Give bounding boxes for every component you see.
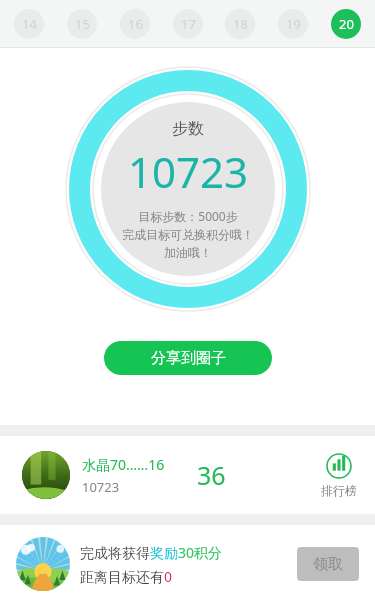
- staticText: 10723: [82, 478, 120, 496]
- button[interactable]: 15: [67, 9, 97, 39]
- button[interactable]: 20: [331, 9, 361, 39]
- staticText: 14: [22, 15, 37, 33]
- staticText: 完成目标可兑换积分哦！: [122, 227, 254, 242]
- staticText: 17: [181, 15, 196, 33]
- button[interactable]: 水晶70……16: [0, 436, 375, 514]
- staticText: 完成将获得奖励30积分: [80, 543, 223, 562]
- staticText: 加油哦！: [164, 245, 212, 260]
- staticText: 分享到圈子: [151, 349, 226, 368]
- staticText: 领取: [313, 555, 343, 574]
- staticText: 水晶70……16: [82, 455, 165, 474]
- staticText: 20: [339, 15, 354, 33]
- staticText: 36: [197, 458, 226, 492]
- staticText: 排行榜: [321, 483, 357, 498]
- button[interactable]: 14: [14, 9, 44, 39]
- staticText: 16: [128, 15, 143, 33]
- button[interactable]: 16: [120, 9, 150, 39]
- button[interactable]: 19: [278, 9, 308, 39]
- staticText: 15: [75, 15, 90, 33]
- button[interactable]: 18: [225, 9, 255, 39]
- staticText: 目标步数：5000步: [138, 208, 238, 224]
- button[interactable]: 17: [173, 9, 203, 39]
- staticText: 距离目标还有0: [80, 567, 173, 586]
- button[interactable]: 排行榜: [321, 453, 357, 498]
- staticText: 步数: [172, 119, 204, 139]
- staticText: 10723: [128, 143, 249, 200]
- button[interactable]: 分享到圈子: [104, 341, 272, 375]
- button[interactable]: 领取: [297, 547, 359, 581]
- staticText: 19: [286, 15, 301, 33]
- staticText: 18: [233, 15, 248, 33]
